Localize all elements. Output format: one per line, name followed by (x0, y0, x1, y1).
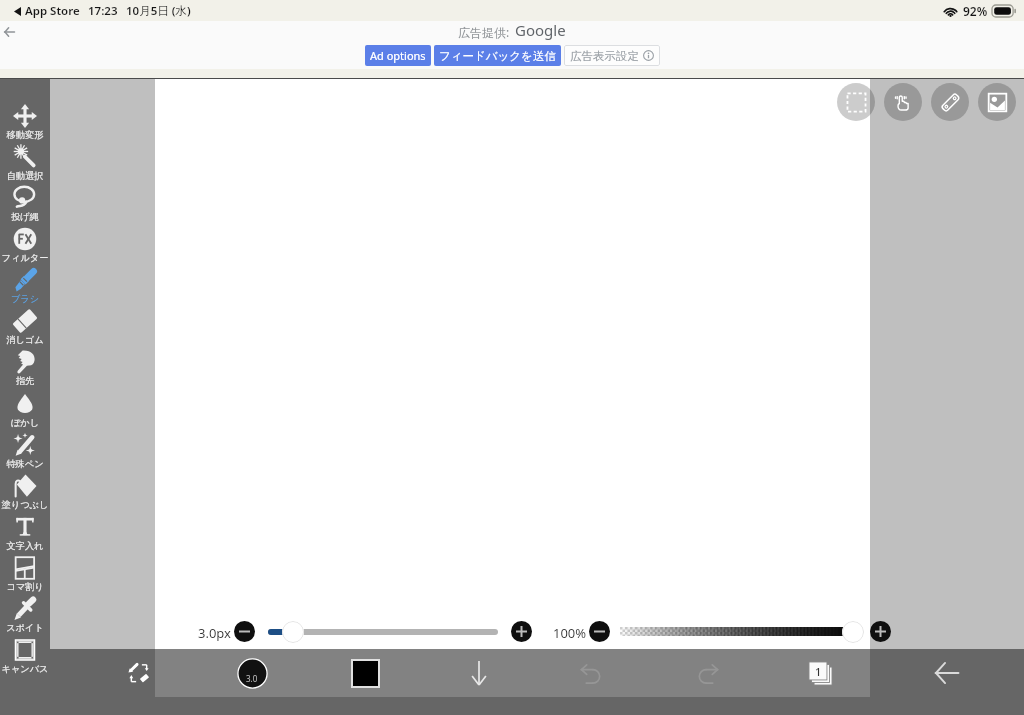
button[interactable]: Ruler (931, 83, 969, 121)
button[interactable]: 指先 (0, 346, 50, 384)
button[interactable]: 自動選択 (0, 141, 50, 179)
button[interactable]: キャンバス (0, 634, 50, 672)
button[interactable]: フィルター (0, 223, 50, 261)
button[interactable]: Back (870, 649, 1024, 697)
button[interactable]: Color (309, 649, 422, 697)
staticText: 消しゴム (0, 334, 50, 346)
button[interactable]: 特殊ペン (0, 429, 50, 467)
staticText: 特殊ペン (0, 458, 50, 470)
staticText: 92% (963, 3, 988, 19)
staticText: 自動選択 (0, 170, 50, 182)
button[interactable]: 移動変形 (0, 100, 50, 138)
button[interactable]: ブラシ (0, 264, 50, 302)
staticText: App Store (25, 3, 80, 19)
button[interactable]: 広告表示設定 (564, 45, 660, 66)
button[interactable]: Increase (870, 621, 891, 642)
staticText: 1 (815, 664, 822, 679)
staticText: ぼかし (0, 417, 50, 429)
button[interactable]: スポイト (0, 593, 50, 631)
button[interactable]: Layers (764, 649, 877, 697)
button[interactable]: 文字入れ (0, 511, 50, 549)
staticText: Google (515, 20, 566, 40)
button[interactable]: 塗りつぶし (0, 470, 50, 508)
staticText: 投げ縄 (0, 211, 50, 223)
button[interactable]: Decrease (589, 621, 610, 642)
staticText: 3.0 (246, 673, 258, 684)
button[interactable]: 消しゴム (0, 305, 50, 343)
staticText: 3.0px (198, 624, 231, 642)
button[interactable]: 投げ縄 (0, 182, 50, 220)
staticText: ブラシ (0, 293, 50, 305)
staticText: 10月5日 (水) (126, 3, 191, 19)
staticText: 広告表示設定 (570, 49, 639, 63)
button[interactable]: Save (422, 649, 535, 697)
staticText: フィードバックを送信 (439, 49, 556, 63)
staticText: 100% (553, 624, 587, 642)
button[interactable]: Swap brush and eraser (82, 649, 195, 697)
button[interactable]: ぼかし (0, 388, 50, 426)
staticText: キャンバス (0, 663, 50, 675)
staticText: Ad options (370, 48, 426, 63)
button[interactable]: Opacity slider (842, 621, 864, 643)
button[interactable]: Select area (837, 83, 875, 121)
button[interactable]: Brush size (196, 649, 309, 697)
button[interactable]: フィードバックを送信 (434, 45, 561, 66)
staticText: フィルター (0, 252, 50, 264)
button[interactable]: Brush size slider (282, 621, 304, 643)
staticText: スポイト (0, 622, 50, 634)
staticText: 文字入れ (0, 540, 50, 552)
button[interactable]: Ad options (365, 45, 431, 66)
button[interactable]: Image (978, 83, 1016, 121)
staticText: 17:23 (88, 3, 118, 19)
staticText: コマ割り (0, 581, 50, 593)
button[interactable]: Decrease (234, 621, 255, 642)
button[interactable]: Increase (511, 621, 532, 642)
button[interactable]: コマ割り (0, 552, 50, 590)
staticText: 指先 (0, 375, 50, 387)
staticText: 塗りつぶし (0, 499, 50, 511)
staticText: 移動変形 (0, 129, 50, 141)
button[interactable]: Pan (884, 83, 922, 121)
staticText: 広告提供: (458, 24, 510, 40)
button[interactable]: Back (0, 15, 26, 49)
